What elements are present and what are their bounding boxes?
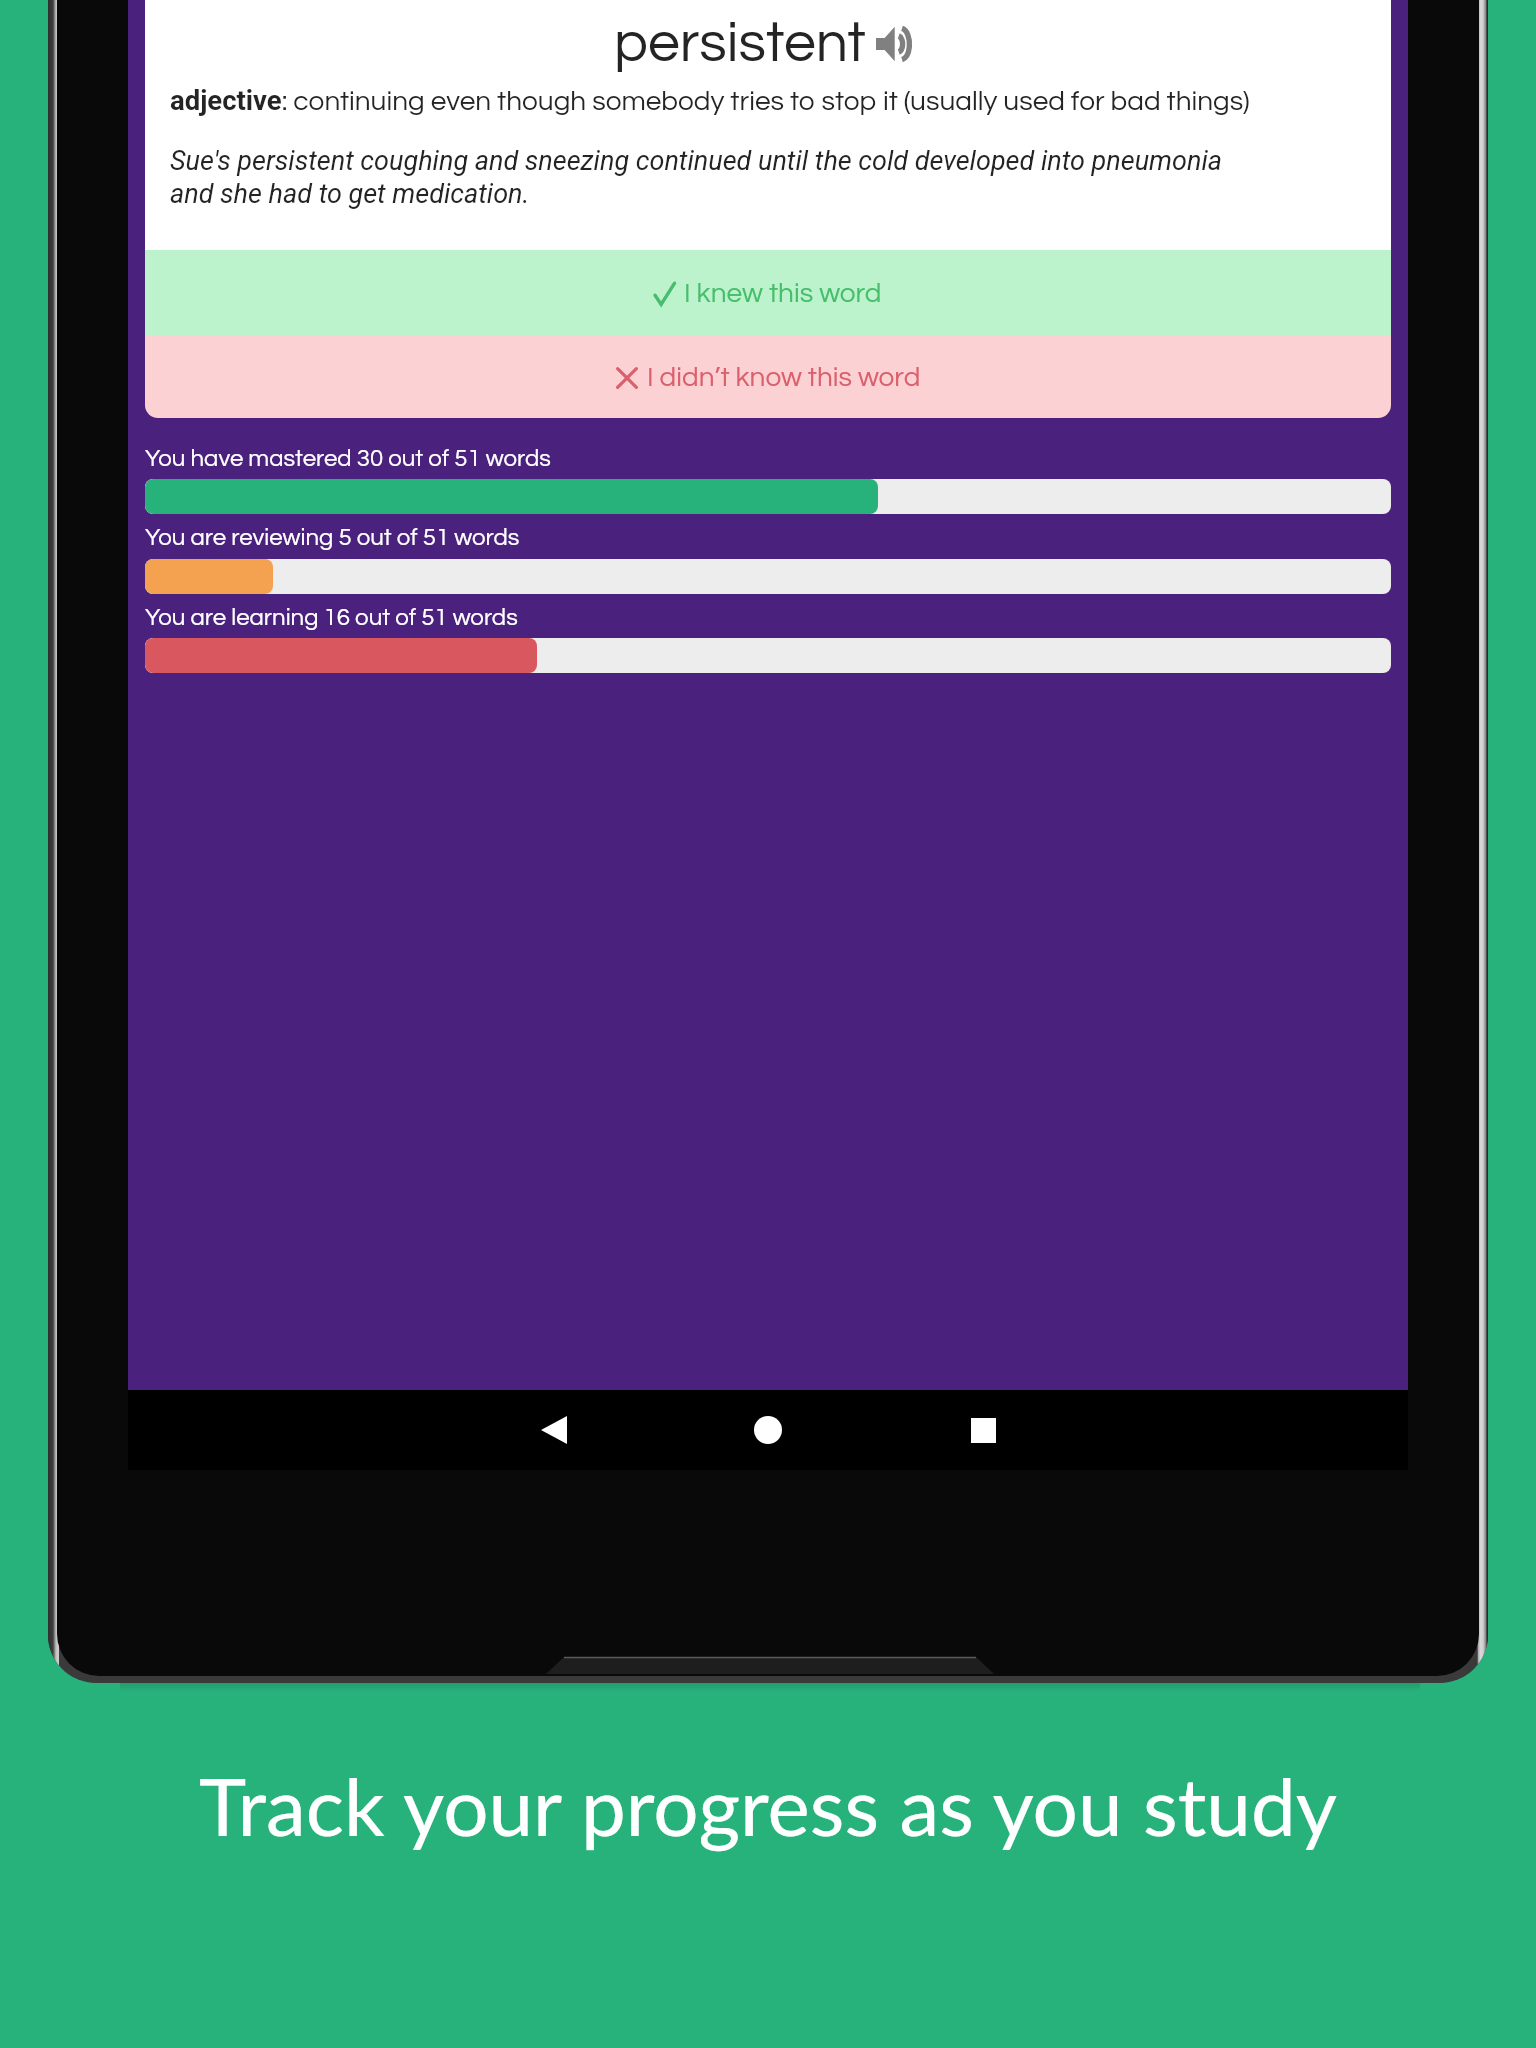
staticText: adjective: continuing even though somebo… [170,84,1395,116]
button[interactable]: I knew this word [145,250,1391,336]
staticText: You have mastered 30 out of 51 words [145,446,551,471]
button[interactable]: Play pronunciation [874,24,914,64]
staticText: You are reviewing 5 out of 51 words [145,525,520,550]
staticText: persistent [614,14,866,73]
staticText: I didn’t know this word [647,363,921,392]
button[interactable]: Back [514,1390,594,1470]
button[interactable]: I didn’t know this word [145,336,1391,418]
button[interactable]: Home [728,1390,808,1470]
staticText: You are learning 16 out of 51 words [145,605,518,630]
button[interactable]: Recent apps [943,1390,1023,1470]
staticText: I knew this word [684,279,882,308]
staticText: Track your progress as you study [199,1757,1337,1853]
staticText: Sue's persistent coughing and sneezing c… [170,145,1230,210]
